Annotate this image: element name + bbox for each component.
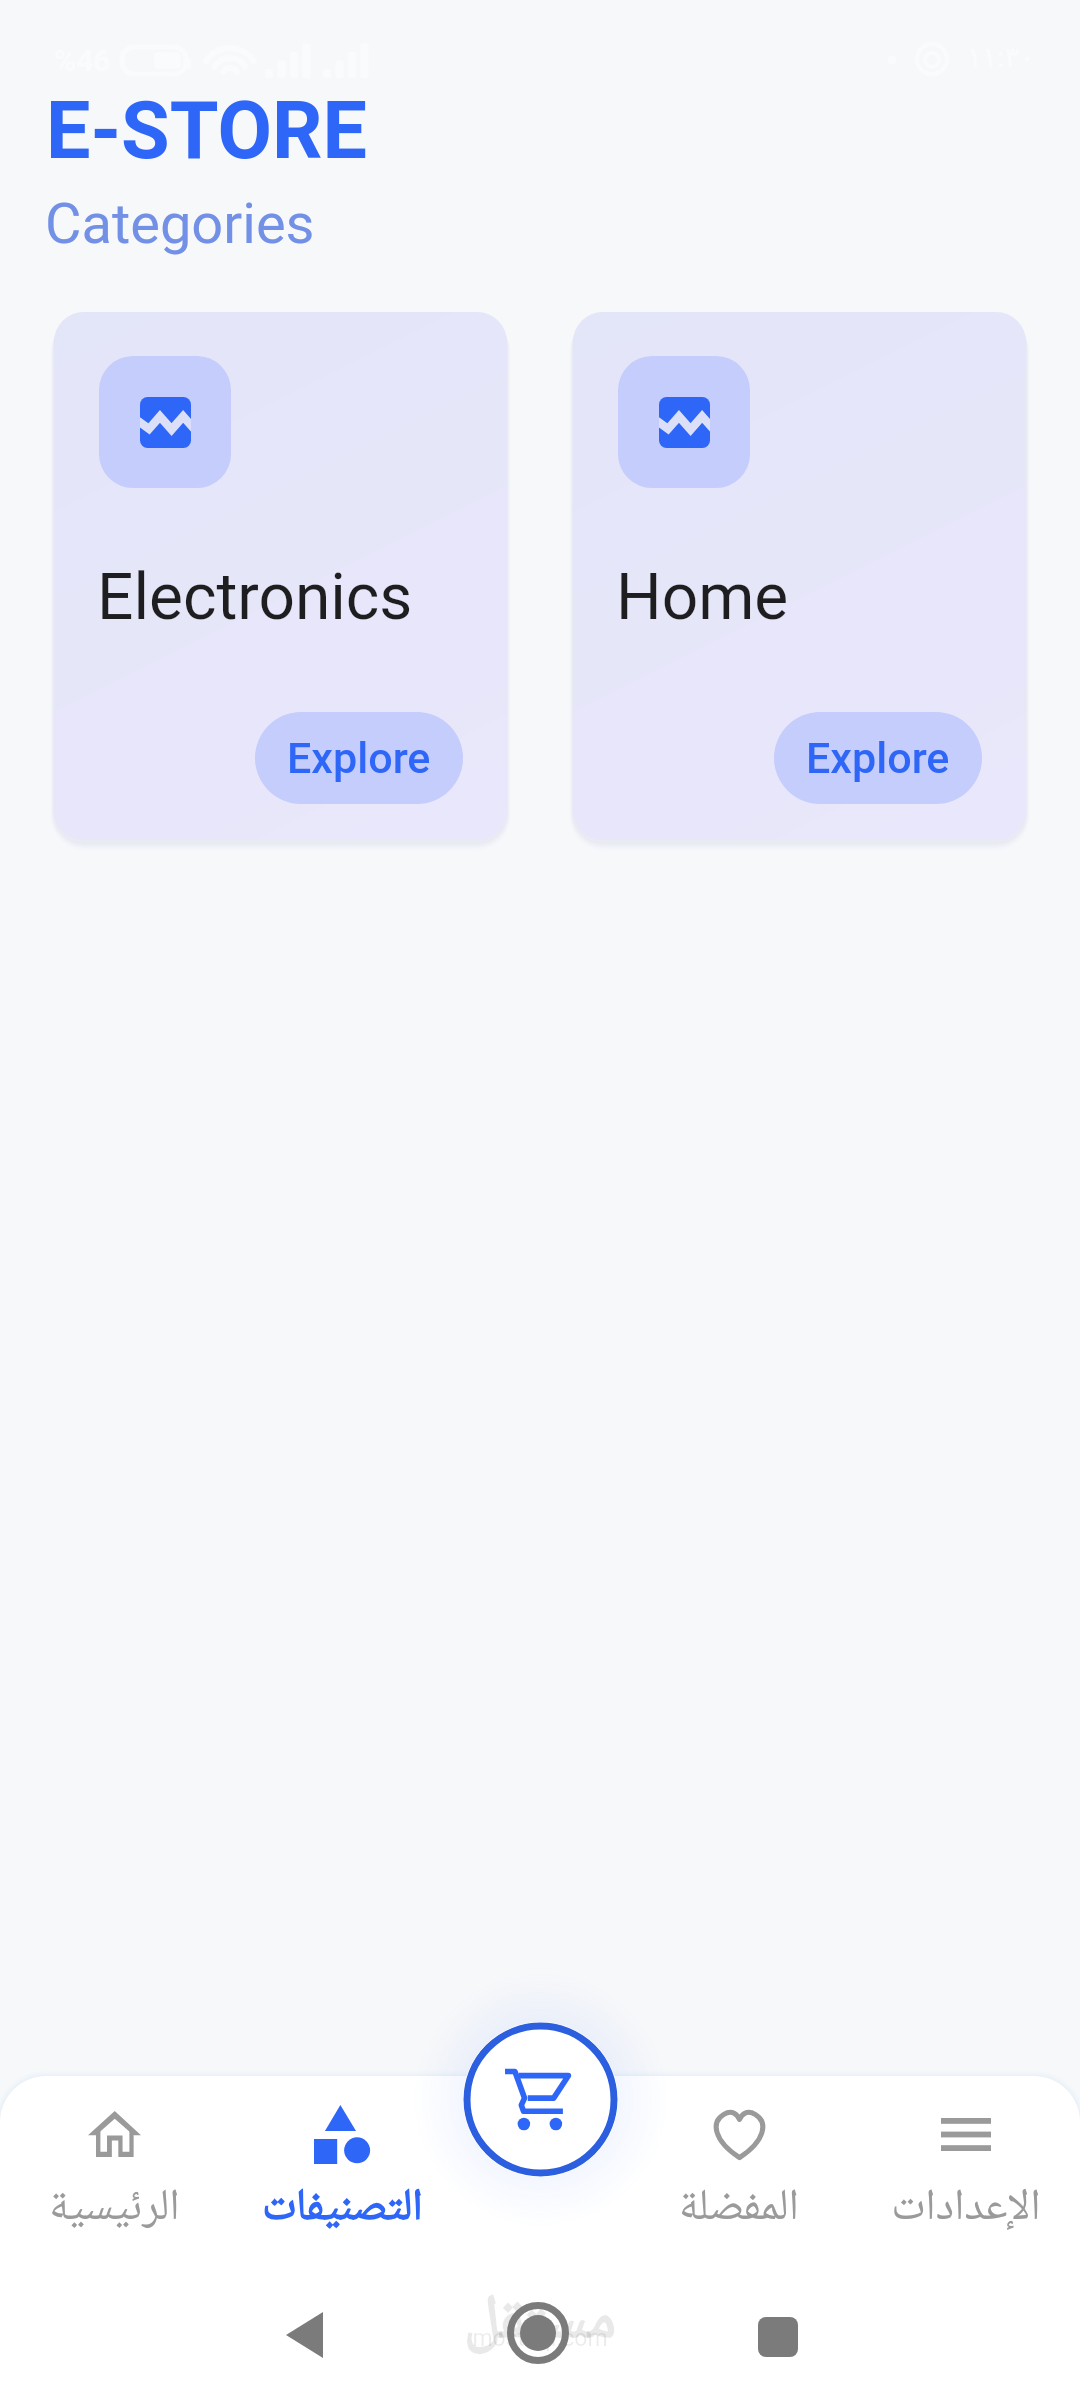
button[interactable]: Explore	[255, 712, 463, 804]
button[interactable]: Electronics	[54, 312, 507, 840]
staticText: Electronics	[97, 560, 413, 635]
staticText: Explore	[287, 733, 431, 783]
staticText: المفضلة	[679, 2172, 799, 2247]
staticText: الإعدادات	[891, 2172, 1041, 2247]
staticText: mostaql.com	[445, 2325, 635, 2352]
staticText: مستقل	[460, 2271, 620, 2377]
staticText: E-STORE	[46, 85, 367, 178]
button[interactable]: المفضلة	[633, 2092, 845, 2258]
button[interactable]: Cart	[463, 2022, 618, 2177]
staticText: Explore	[806, 733, 950, 783]
button[interactable]: الرئيسية	[8, 2092, 220, 2258]
staticText: Home	[616, 560, 789, 635]
button[interactable]: Explore	[774, 712, 982, 804]
button[interactable]: التصنيفات	[236, 2092, 448, 2258]
staticText: الرئيسية	[49, 2172, 180, 2247]
staticText: التصنيفات	[262, 2172, 423, 2247]
button[interactable]: الإعدادات	[860, 2092, 1072, 2258]
staticText: Categories	[45, 191, 315, 257]
button[interactable]: Home	[573, 312, 1026, 840]
